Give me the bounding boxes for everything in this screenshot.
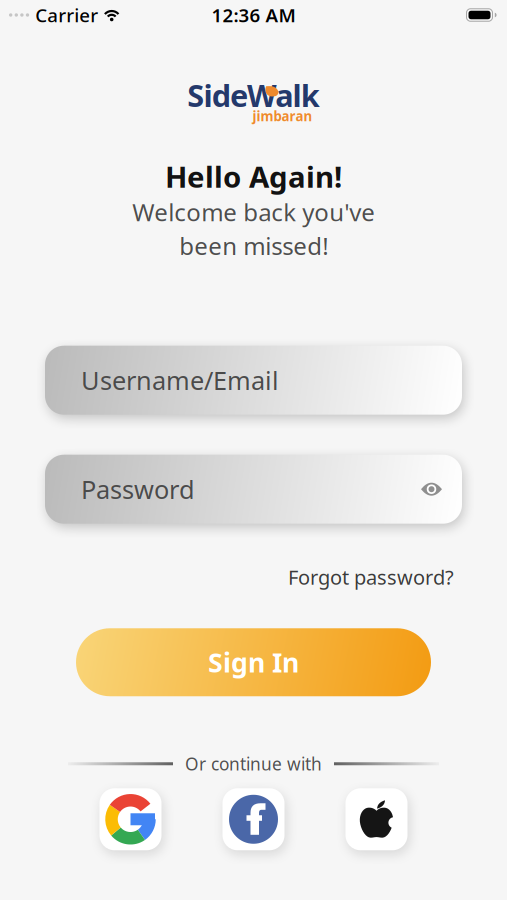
button[interactable]: Continue with Apple [345,788,407,850]
staticText: Forgot password? [288,564,454,590]
staticText: Password [81,472,195,506]
button[interactable]: Password [0,455,507,524]
staticText: Sign In [208,645,299,680]
staticText: Hello Again! [165,157,342,196]
staticText: Welcome back you've been missed! [132,196,375,262]
button[interactable]: Forgot password? [288,564,454,590]
staticText: Username/Email [81,363,279,397]
button[interactable]: Continue with Facebook [222,788,284,850]
staticText: 12:36 AM [211,3,295,27]
staticText: Or continue with [185,752,322,775]
staticText: SideWalk [187,75,320,115]
staticText: jimbaran [252,107,312,125]
button[interactable]: Continue with Google [99,788,161,850]
button[interactable]: Sign In [0,628,507,696]
button[interactable]: Username/Email [0,346,507,415]
staticText: Carrier [35,3,98,27]
